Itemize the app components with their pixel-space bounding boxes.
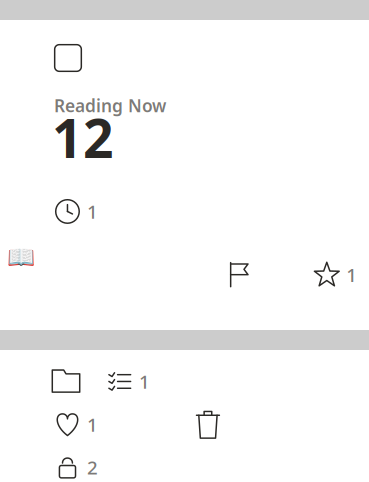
button[interactable]: Deleted [194,410,222,438]
button[interactable]: Library [54,44,82,72]
button[interactable]: Favourites [311,259,357,290]
button[interactable]: Liked [52,409,98,440]
button[interactable]: Hours this week [52,196,98,227]
button[interactable]: Collections [52,367,80,395]
staticText: 12 [52,102,114,173]
button[interactable]: Finished [104,366,150,397]
staticText: 📖 [7,244,35,270]
staticText: 1 [87,412,98,437]
staticText: 2 [87,455,98,480]
staticText: Reading Now [54,94,166,117]
staticText: 1 [87,199,98,224]
button[interactable]: Private [52,452,98,482]
button[interactable]: Reading goal [222,258,255,291]
staticText: 1 [346,262,357,287]
staticText: 1 [139,369,150,394]
